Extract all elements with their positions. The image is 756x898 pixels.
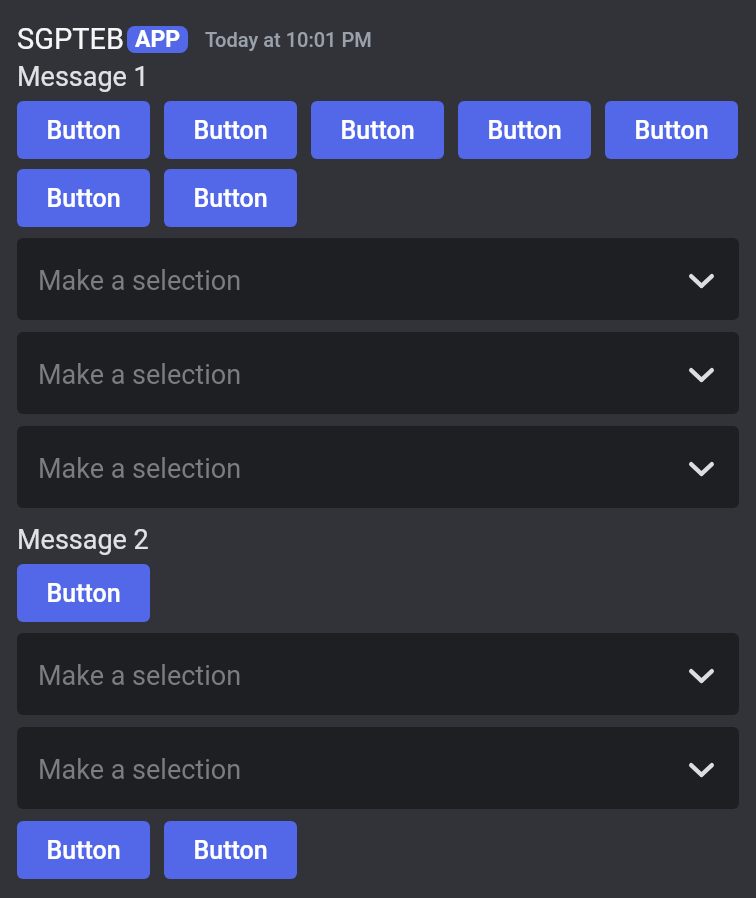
- staticText: Button: [193, 836, 268, 865]
- button[interactable]: Button: [17, 821, 150, 879]
- button[interactable]: Button: [17, 169, 150, 227]
- staticText: Today at 10:01 PM: [205, 28, 372, 51]
- other: Open select menu: [689, 763, 714, 777]
- button[interactable]: Button: [17, 564, 150, 622]
- staticText: Make a selection: [38, 660, 242, 692]
- staticText: Make a selection: [38, 453, 242, 485]
- staticText: Make a selection: [38, 754, 242, 786]
- button[interactable]: Make a selection: [17, 727, 739, 809]
- staticText: Message 1: [17, 61, 149, 93]
- button[interactable]: Button: [164, 169, 297, 227]
- other: Open select menu: [689, 368, 714, 382]
- button[interactable]: Button: [458, 101, 591, 159]
- button[interactable]: Make a selection: [17, 238, 739, 320]
- button[interactable]: Button: [311, 101, 444, 159]
- button[interactable]: Button: [164, 101, 297, 159]
- button[interactable]: Make a selection: [17, 633, 739, 715]
- staticText: Button: [340, 116, 415, 145]
- staticText: Message 2: [17, 524, 149, 556]
- other: Open select menu: [689, 274, 714, 288]
- staticText: Button: [46, 116, 121, 145]
- staticText: Make a selection: [38, 359, 242, 391]
- staticText: Button: [193, 184, 268, 213]
- staticText: APP: [135, 26, 181, 53]
- staticText: Button: [634, 116, 709, 145]
- staticText: Button: [193, 116, 268, 145]
- button[interactable]: Make a selection: [17, 426, 739, 508]
- button[interactable]: Button: [17, 101, 150, 159]
- other: Open select menu: [689, 462, 714, 476]
- button[interactable]: Button: [605, 101, 738, 159]
- staticText: Button: [46, 836, 121, 865]
- button[interactable]: Button: [164, 821, 297, 879]
- staticText: Button: [46, 184, 121, 213]
- button[interactable]: Make a selection: [17, 332, 739, 414]
- staticText: Make a selection: [38, 265, 242, 297]
- button[interactable]: APP: [127, 26, 188, 53]
- staticText: Button: [487, 116, 562, 145]
- other: Open select menu: [689, 669, 714, 683]
- staticText: SGPTEB: [17, 22, 125, 56]
- staticText: Button: [46, 579, 121, 608]
